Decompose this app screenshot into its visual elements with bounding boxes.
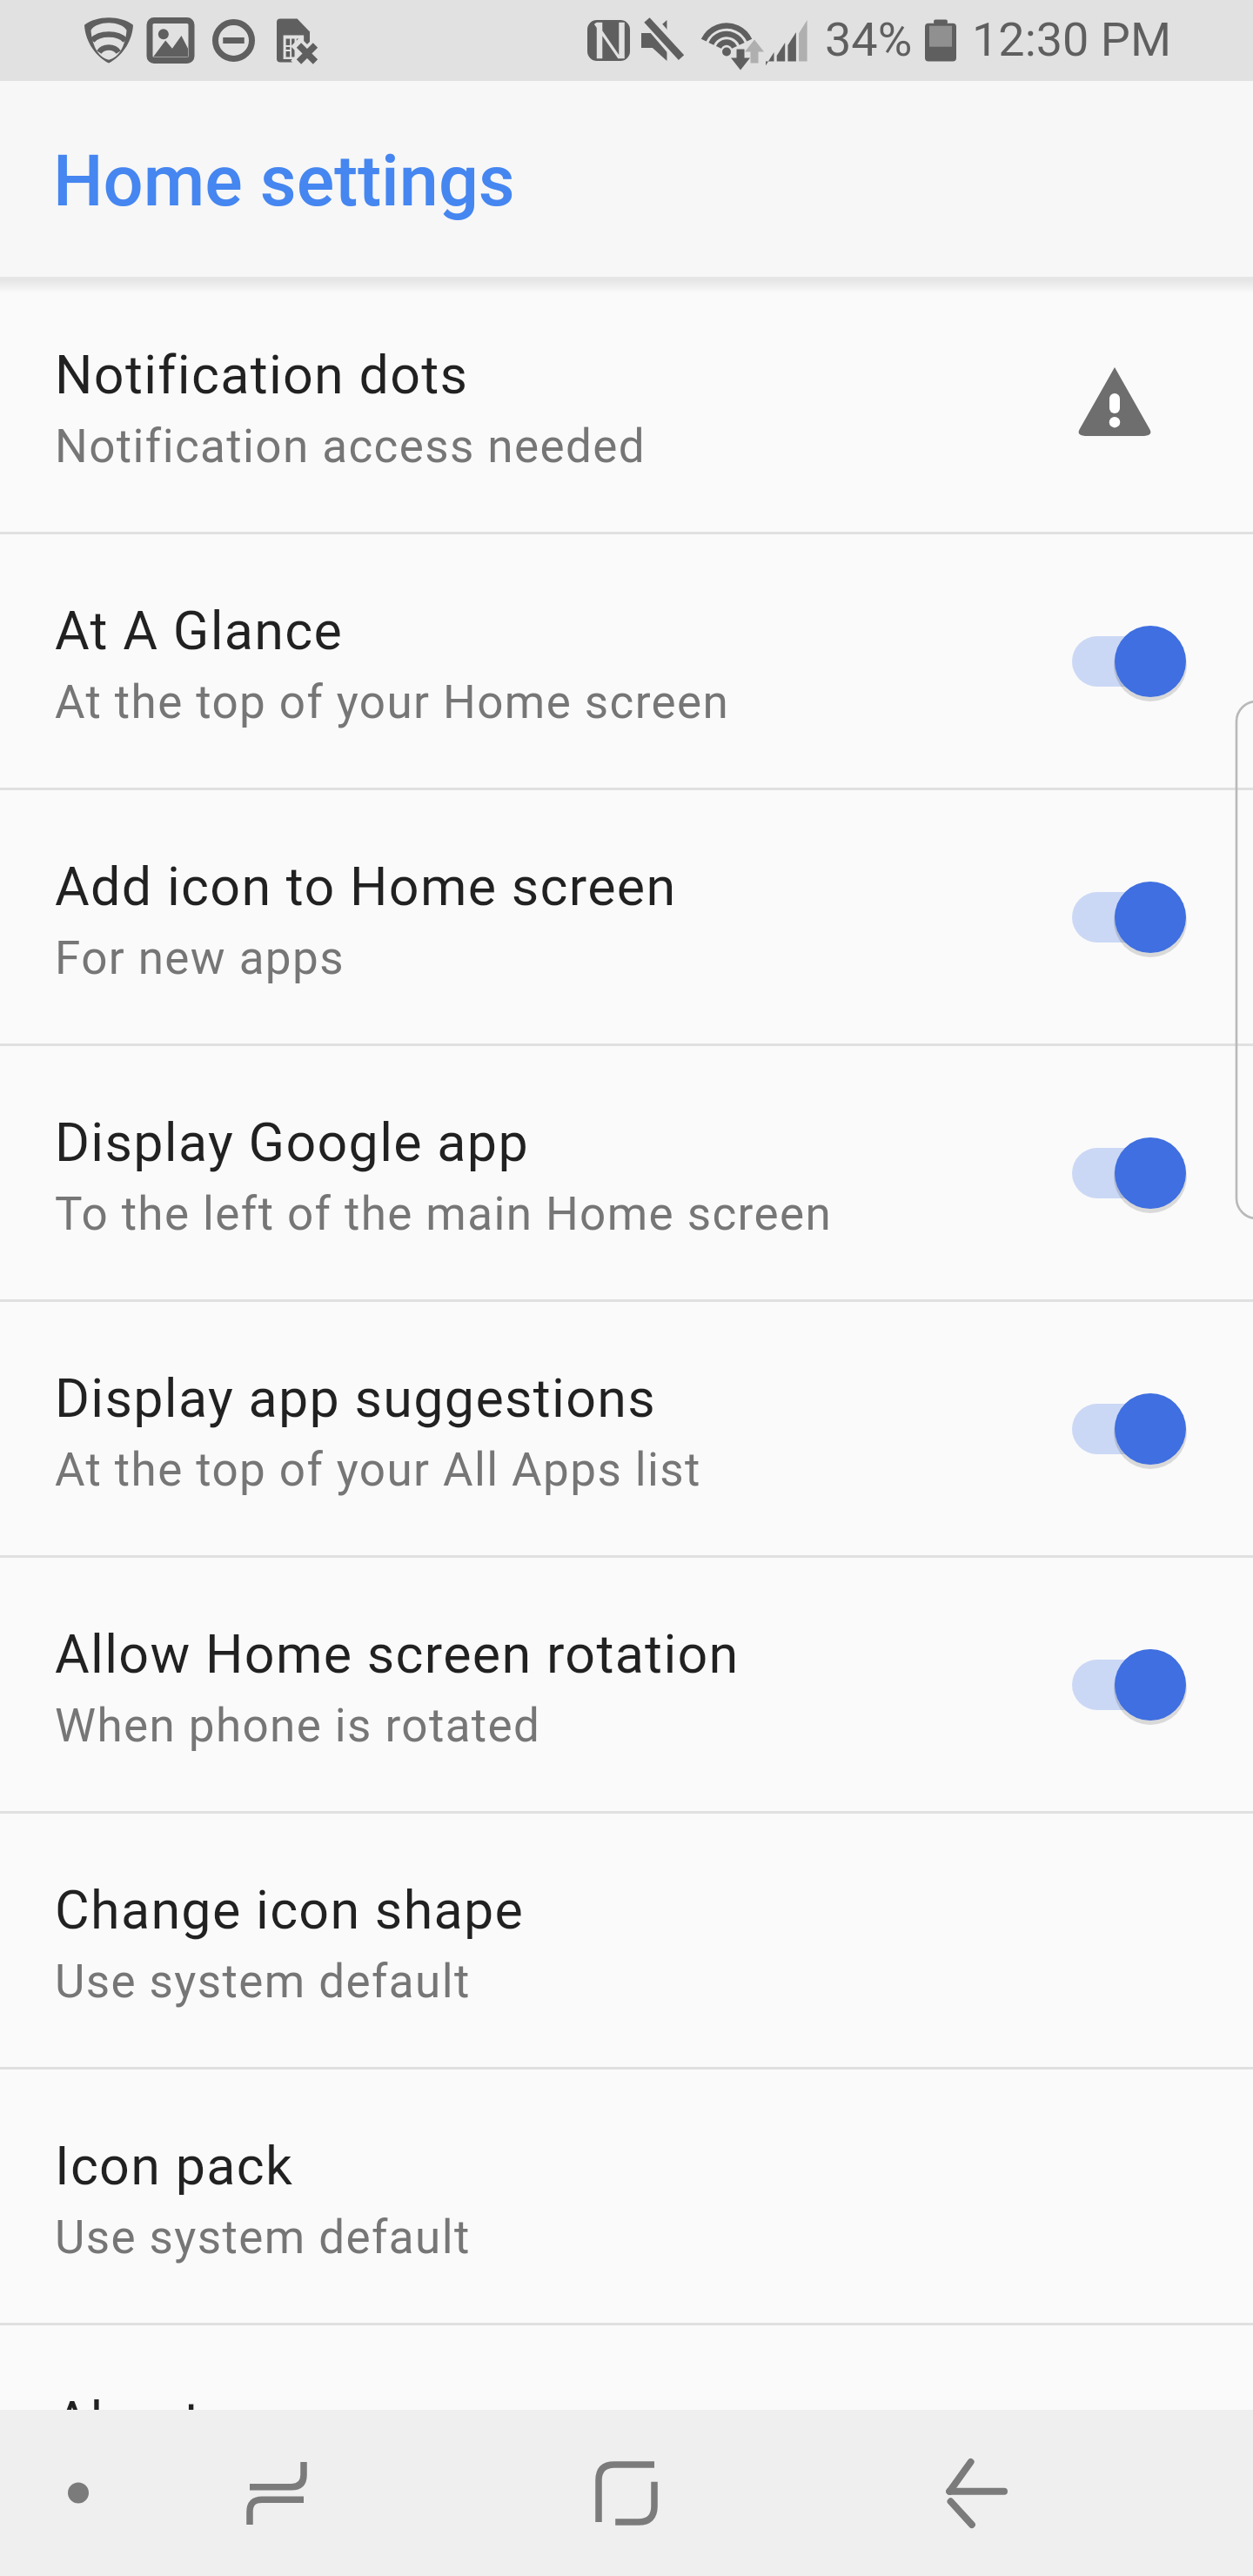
staticText: At the top of your Home screen [55, 675, 730, 729]
button[interactable]: Home [566, 2432, 687, 2554]
staticText: For new apps [55, 931, 345, 985]
staticText: When phone is rotated [55, 1699, 541, 1753]
button[interactable]: Notification dots [0, 278, 1253, 532]
staticText: Use system default [55, 2210, 471, 2264]
staticText: Icon pack [55, 2135, 294, 2197]
staticText: At the top of your All Apps list [55, 1443, 701, 1497]
staticText: Home settings [53, 140, 515, 223]
staticText: Version 9-4861174 [55, 2465, 463, 2519]
button[interactable]: Back [915, 2432, 1037, 2554]
button[interactable]: Display Google app [0, 1046, 1253, 1299]
staticText: About [55, 2390, 202, 2452]
staticText: At A Glance [55, 600, 344, 661]
button[interactable]: At A Glance [0, 534, 1253, 788]
staticText: 12:30 PM [972, 12, 1172, 67]
staticText: Allow Home screen rotation [55, 1623, 740, 1685]
staticText: To the left of the main Home screen [55, 1187, 833, 1241]
button[interactable]: Toggle setting [1072, 621, 1187, 701]
button[interactable]: Toggle setting [1072, 1389, 1187, 1469]
button[interactable]: About [0, 2325, 1253, 2576]
staticText: Display Google app [55, 1111, 529, 1173]
button[interactable]: Recent apps [216, 2432, 338, 2554]
button[interactable]: Allow Home screen rotation [0, 1558, 1253, 1811]
button[interactable]: Add icon to Home screen [0, 790, 1253, 1043]
staticText: Display app suggestions [55, 1367, 657, 1429]
staticText: Add icon to Home screen [55, 855, 677, 917]
button[interactable]: Toggle setting [1072, 877, 1187, 957]
staticText: Use system default [55, 1955, 471, 2009]
other: Warning [1075, 367, 1154, 436]
button[interactable]: Toggle setting [1072, 1133, 1187, 1213]
staticText: Notification dots [55, 344, 469, 406]
staticText: Notification access needed [55, 419, 647, 473]
button[interactable]: Display app suggestions [0, 1302, 1253, 1555]
button[interactable]: Change icon shape [0, 1814, 1253, 2067]
staticText: 34% [825, 12, 913, 67]
button[interactable]: Icon pack [0, 2070, 1253, 2323]
staticText: Change icon shape [55, 1879, 525, 1941]
button[interactable]: Toggle setting [1072, 1645, 1187, 1725]
